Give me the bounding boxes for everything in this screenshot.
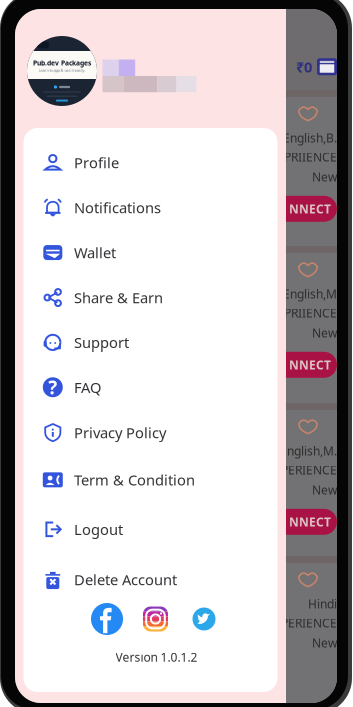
staticText: Share & Earn: [74, 288, 163, 307]
staticText: New: [312, 169, 337, 185]
button[interactable]: Profile: [23, 140, 277, 185]
staticText: NNECT: [289, 514, 331, 530]
staticText: Profile: [74, 153, 119, 172]
staticText: English,M.: [280, 443, 337, 459]
staticText: Version 1.0.1.2: [115, 649, 197, 665]
button[interactable]: Delete Account: [23, 554, 277, 604]
button[interactable]: Instagram: [143, 606, 168, 631]
button[interactable]: Privacy Policy: [23, 410, 277, 455]
button[interactable]: Support: [23, 320, 277, 365]
button[interactable]: Logout: [23, 504, 277, 554]
button[interactable]: Notifications: [23, 185, 277, 230]
staticText: New: [312, 325, 337, 341]
staticText: Term & Condition: [74, 470, 195, 490]
staticText: PERIENCE: [281, 462, 337, 478]
button[interactable]: Term & Condition: [23, 455, 277, 504]
staticText: Privacy Policy: [74, 423, 166, 442]
staticText: Wallet: [74, 243, 116, 262]
staticText: ₹0: [296, 57, 312, 76]
staticText: Notifications: [74, 198, 161, 217]
staticText: Support: [74, 333, 129, 352]
staticText: FAQ: [74, 377, 101, 397]
staticText: New: [312, 635, 337, 651]
staticText: PERIENCE: [281, 615, 337, 631]
button[interactable]: Share & Earn: [23, 275, 277, 320]
staticText: PRIIENCE: [284, 305, 337, 321]
staticText: Logout: [74, 520, 123, 539]
button[interactable]: ?: [23, 365, 277, 410]
staticText: Learn to app & use it easily.: [38, 67, 85, 73]
button[interactable]: Twitter: [192, 607, 215, 630]
staticText: NNECT: [289, 201, 331, 217]
button[interactable]: Facebook: [91, 603, 123, 635]
staticText: PRIIENCE: [284, 149, 337, 165]
staticText: Pub.dev Packages: [33, 58, 91, 67]
staticText: English,B.: [283, 130, 337, 146]
button[interactable]: Wallet: [23, 230, 277, 275]
staticText: Hindi: [308, 596, 337, 612]
staticText: NNECT: [289, 357, 331, 373]
staticText: New: [312, 482, 337, 498]
staticText: English,M: [283, 286, 337, 302]
staticText: ?: [48, 375, 57, 400]
staticText: Delete Account: [74, 570, 177, 589]
